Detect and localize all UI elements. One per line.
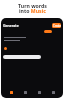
button[interactable]: Create bbox=[52, 23, 61, 28]
button[interactable]: Home bbox=[7, 88, 15, 96]
button[interactable]: Profile bbox=[49, 88, 57, 96]
button[interactable]: Library bbox=[35, 88, 43, 96]
button[interactable]: Explore bbox=[21, 88, 29, 96]
button[interactable]: Prompt bbox=[3, 55, 41, 59]
staticText: Turn words into Music bbox=[18, 2, 47, 15]
button[interactable]: Tag bbox=[44, 30, 52, 33]
staticText: Generate bbox=[3, 23, 19, 28]
staticText: Create bbox=[53, 24, 61, 28]
